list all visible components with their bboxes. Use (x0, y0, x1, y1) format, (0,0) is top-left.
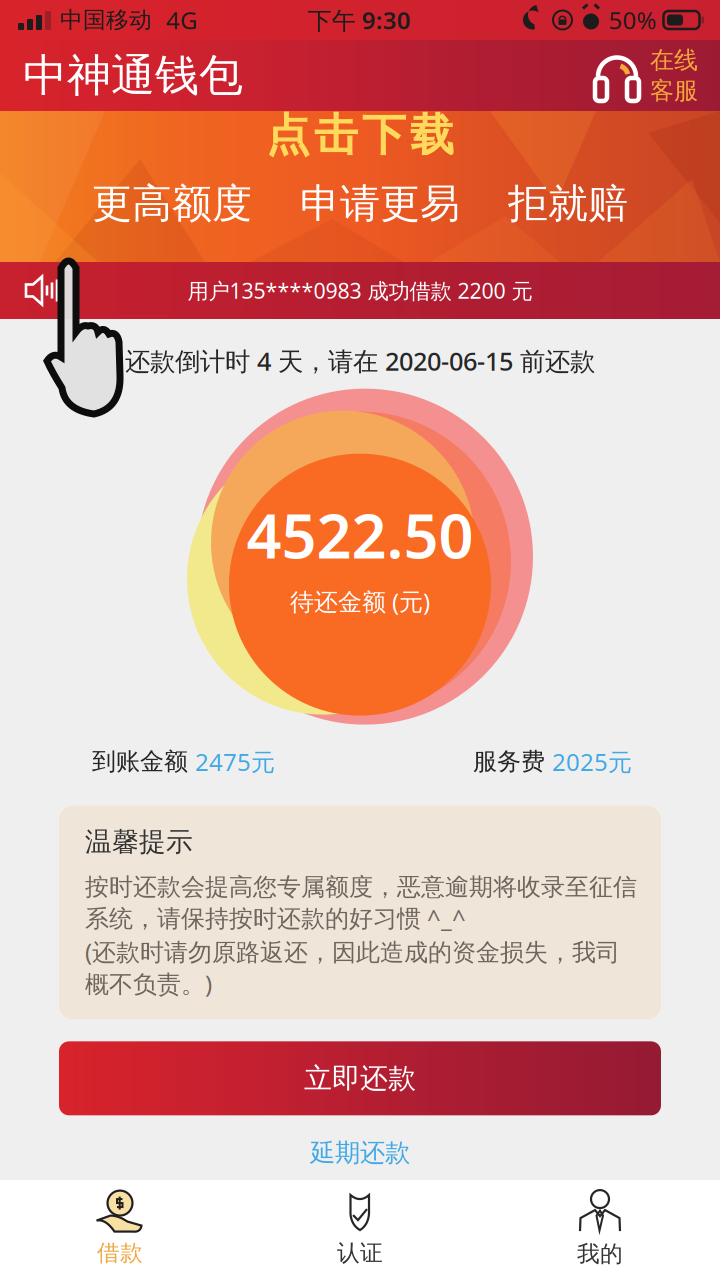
staticText: 更高额度 申请更易 拒就赔 (92, 179, 628, 228)
staticText: 到账金额 (92, 747, 195, 776)
staticText: 用户135****0983 成功借款 2200 元 (187, 276, 532, 305)
button[interactable]: 在线客服 (592, 45, 698, 105)
staticText: 2025元 (552, 746, 632, 777)
staticText: 2475元 (195, 746, 275, 777)
button[interactable]: 借款 (0, 1181, 240, 1279)
staticText: 点击下载 (266, 108, 454, 162)
staticText: 还款倒计时 4 天，请在 2020-06-15 前还款 (125, 344, 595, 378)
staticText: 客服 (650, 76, 698, 105)
staticText: 按时还款会提高您专属额度，恶意逾期将收录至征信系统，请保持按时还款的好习惯 ^_… (85, 872, 637, 934)
button[interactable]: 立即还款 (59, 1041, 661, 1115)
staticText: 4522.50 (246, 494, 473, 575)
button[interactable]: 认证 (240, 1181, 480, 1279)
staticText: 待还金额 (元) (290, 585, 430, 617)
staticText: (还款时请勿原路返还，因此造成的资金损失，我司概不负责。) (85, 936, 620, 999)
staticText: 温馨提示 (85, 825, 193, 858)
button[interactable]: 我的 (480, 1180, 720, 1280)
staticText: 中神通钱包 (23, 48, 243, 102)
staticText: 立即还款 (304, 1061, 416, 1096)
staticText: 我的 (577, 1240, 623, 1268)
staticText: 中国移动 (60, 6, 152, 34)
staticText: 4G (166, 4, 197, 36)
staticText: 认证 (337, 1239, 383, 1267)
staticText: 服务费 (473, 747, 552, 776)
button[interactable]: 延期还款 (280, 1131, 440, 1174)
staticText: 在线 (650, 45, 698, 75)
staticText: 50% (608, 4, 656, 36)
staticText: 借款 (97, 1239, 143, 1267)
staticText: 下午 9:30 (308, 4, 411, 36)
staticText: 延期还款 (310, 1137, 410, 1168)
